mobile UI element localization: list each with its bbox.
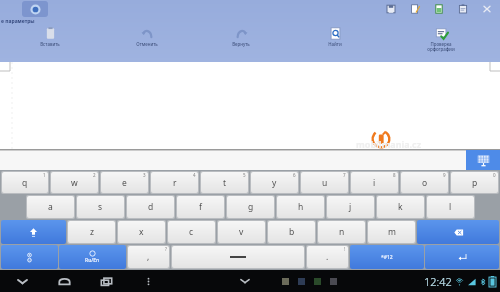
staticText: Найти — [328, 41, 342, 47]
button[interactable]: n — [318, 221, 365, 243]
staticText: v — [239, 226, 244, 238]
staticText: t — [223, 177, 227, 189]
button[interactable]: Найти — [288, 25, 382, 62]
staticText: k — [398, 201, 403, 213]
staticText: y — [272, 177, 277, 189]
button[interactable]: Проверка орфографии — [382, 25, 500, 62]
button[interactable]: l — [427, 196, 474, 218]
button[interactable]: Edit — [408, 2, 422, 16]
button[interactable]: Keyboard settings — [466, 150, 500, 170]
staticText: Вернуть — [232, 41, 250, 47]
button[interactable]: y — [251, 172, 298, 193]
staticText: u — [322, 177, 328, 189]
button[interactable]: Save — [384, 2, 398, 16]
staticText: m — [388, 226, 396, 238]
button[interactable]: Home — [54, 271, 74, 291]
button[interactable]: More options — [138, 271, 158, 291]
button[interactable]: h — [277, 196, 324, 218]
staticText: p — [472, 177, 478, 189]
staticText: e — [122, 177, 127, 189]
button[interactable]: New document — [432, 2, 446, 16]
staticText: . — [326, 251, 329, 263]
staticText: 9 — [443, 172, 446, 178]
staticText: 5 — [243, 172, 246, 178]
button[interactable]: Switch language — [59, 245, 126, 269]
staticText: 1 — [43, 172, 46, 178]
staticText: n — [339, 226, 345, 238]
staticText: d — [148, 201, 154, 213]
button[interactable]: Enter — [425, 245, 499, 269]
button[interactable]: s — [77, 196, 124, 218]
button[interactable]: g — [227, 196, 274, 218]
button[interactable]: c — [168, 221, 215, 243]
staticText: 7 — [343, 172, 346, 178]
staticText: 8 — [393, 172, 396, 178]
button[interactable]: k — [377, 196, 424, 218]
button[interactable]: u — [301, 172, 348, 193]
button[interactable] — [172, 246, 304, 268]
staticText: h — [298, 201, 304, 213]
staticText: o — [422, 177, 428, 189]
staticText: g — [248, 201, 254, 213]
staticText: 0 — [493, 172, 496, 178]
staticText: е параметры — [1, 18, 35, 25]
button[interactable]: Hide keyboard — [12, 271, 32, 291]
button[interactable]: t — [201, 172, 248, 193]
staticText: r — [173, 177, 177, 189]
button[interactable]: Recent apps — [96, 271, 116, 291]
button[interactable]: m — [368, 221, 415, 243]
staticText: , — [147, 251, 150, 263]
staticText: 6 — [293, 172, 296, 178]
button[interactable]: o — [401, 172, 448, 193]
staticText: ? — [165, 246, 167, 252]
staticText: z — [90, 226, 94, 238]
button[interactable]: p — [451, 172, 498, 193]
button[interactable]: Expand notifications — [236, 272, 254, 290]
staticText: x — [139, 226, 144, 238]
staticText: j — [349, 201, 352, 213]
button[interactable]: r — [151, 172, 198, 193]
button[interactable]: b — [268, 221, 315, 243]
button[interactable]: Close — [480, 2, 494, 16]
staticText: 3 — [143, 172, 146, 178]
button[interactable]: Backspace — [417, 220, 499, 244]
button[interactable]: Вернуть — [194, 25, 288, 62]
staticText: w — [71, 177, 78, 189]
staticText: 4 — [193, 172, 196, 178]
staticText: ! — [344, 246, 346, 252]
staticText: Отменить — [136, 41, 158, 47]
button[interactable]: f — [177, 196, 224, 218]
staticText: b — [289, 226, 295, 238]
button[interactable]: Clipboard — [456, 2, 470, 16]
button[interactable]: v — [218, 221, 265, 243]
button[interactable]: App menu — [22, 1, 48, 17]
staticText: Ru/En — [85, 257, 100, 264]
button[interactable]: Symbols — [350, 245, 424, 269]
button[interactable]: j — [327, 196, 374, 218]
button[interactable]: Отменить — [100, 25, 194, 62]
button[interactable]: q — [2, 172, 48, 193]
staticText: Проверка орфографии — [427, 41, 455, 52]
staticText: q — [22, 177, 28, 189]
button[interactable]: x — [118, 221, 165, 243]
button[interactable]: Emoji and settings — [1, 245, 58, 269]
button[interactable]: e — [101, 172, 148, 193]
staticText: s — [98, 201, 103, 213]
button[interactable]: d — [127, 196, 174, 218]
button[interactable]: z — [68, 221, 115, 243]
staticText: *#12 — [381, 254, 393, 261]
staticText: 12:42 — [424, 274, 452, 289]
staticText: f — [199, 201, 202, 213]
staticText: c — [189, 226, 194, 238]
button[interactable]: , — [128, 246, 169, 268]
staticText: a — [48, 201, 53, 213]
staticText: 2 — [93, 172, 96, 178]
button[interactable]: . — [307, 246, 348, 268]
button[interactable]: a — [27, 196, 74, 218]
button[interactable]: Вставить — [0, 25, 100, 62]
button[interactable]: w — [51, 172, 98, 193]
button[interactable]: Shift — [1, 220, 66, 244]
button[interactable]: i — [351, 172, 398, 193]
staticText: Вставить — [40, 41, 60, 47]
staticText: i — [373, 177, 376, 189]
